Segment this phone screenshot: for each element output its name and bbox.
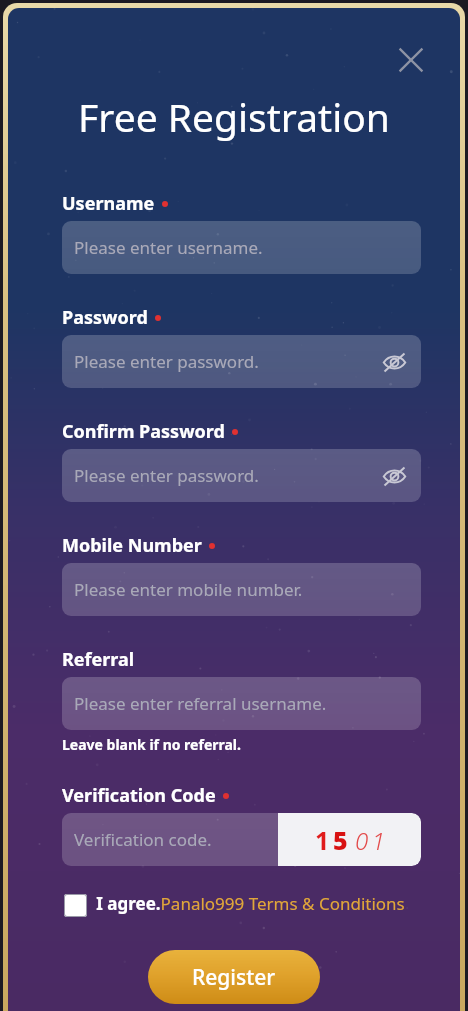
staticText: 1 5 0 1 [315,823,385,857]
staticText: Confirm Password [62,419,225,444]
button[interactable]: Register [148,950,320,1004]
button[interactable]: Close [384,33,438,87]
staticText: I agree.Panalo999 Terms & Conditions [96,892,405,915]
button[interactable]: Show password [377,345,411,379]
staticText: Verification Code [62,783,216,808]
staticText: Please enter username. [74,236,263,259]
button[interactable]: Please enter mobile number. [62,563,421,616]
staticText: Mobile Number [62,533,202,558]
button[interactable]: Please enter username. [62,221,421,274]
staticText: Please enter password. [74,350,259,373]
button[interactable]: Refresh verification code [278,813,421,866]
button[interactable]: I agree.Panalo999 Terms & Conditions [64,892,405,915]
staticText: Password [62,305,148,330]
staticText: Register [192,963,276,992]
button[interactable]: Please enter password. [62,335,421,388]
button[interactable]: Please enter password. [62,449,421,502]
staticText: Verification code. [74,828,212,851]
staticText: Please enter referral username. [74,692,327,715]
button[interactable]: Show password [377,459,411,493]
button[interactable]: Verification code. [62,813,421,866]
staticText: Leave blank if no referral. [62,735,241,754]
staticText: Username [62,191,155,216]
button[interactable]: Please enter referral username. [62,677,421,730]
staticText: Please enter mobile number. [74,578,303,601]
staticText: Please enter password. [74,464,259,487]
staticText: Free Registration [78,90,390,143]
staticText: Referral [62,647,135,672]
